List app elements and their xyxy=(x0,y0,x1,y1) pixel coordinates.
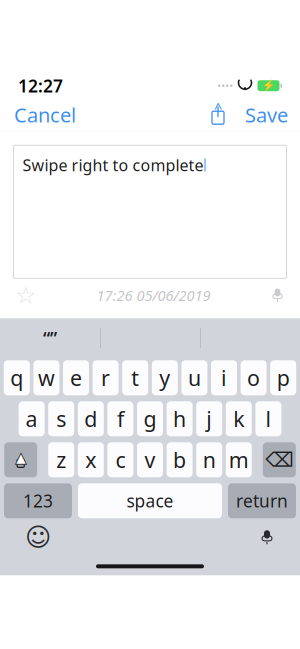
staticText: ☺ xyxy=(25,523,51,552)
staticText: d xyxy=(84,405,97,433)
staticText: ⌫ xyxy=(265,448,293,471)
button[interactable]: Dictate xyxy=(263,283,292,307)
button[interactable]: s xyxy=(48,401,74,436)
staticText: 12:27 xyxy=(18,74,63,97)
button[interactable]: r xyxy=(93,360,119,395)
button[interactable]: Favourite xyxy=(8,277,44,314)
staticText: l xyxy=(265,405,271,433)
staticText: x xyxy=(85,446,96,474)
button[interactable]: Shift xyxy=(4,442,37,477)
staticText: i xyxy=(221,364,227,392)
staticText: Swipe right to complete xyxy=(22,154,203,175)
staticText: f xyxy=(117,405,124,433)
button[interactable]: o xyxy=(241,360,267,395)
button[interactable]: 123 xyxy=(4,483,72,518)
staticText: r xyxy=(101,364,110,392)
button[interactable]: Share xyxy=(203,98,233,132)
staticText: a xyxy=(26,405,38,433)
button[interactable]: e xyxy=(63,360,89,395)
button[interactable]: return xyxy=(228,483,296,518)
button[interactable]: space xyxy=(78,483,222,518)
button[interactable]: v xyxy=(137,442,163,477)
staticText: h xyxy=(173,405,186,433)
staticText: n xyxy=(203,446,216,474)
staticText: k xyxy=(233,405,244,433)
staticText: ▲ xyxy=(15,449,26,466)
button[interactable]: x xyxy=(78,442,104,477)
button[interactable]: l xyxy=(255,401,281,436)
button[interactable]: g xyxy=(137,401,163,436)
button[interactable]: p xyxy=(270,360,296,395)
staticText: t xyxy=(131,364,139,392)
staticText: ☆ xyxy=(15,282,37,309)
staticText: ^ xyxy=(214,98,222,117)
staticText: 123 xyxy=(23,489,53,512)
button[interactable]: n xyxy=(196,442,222,477)
staticText: z xyxy=(56,446,66,474)
staticText: space xyxy=(126,489,173,512)
button[interactable]: q xyxy=(4,360,30,395)
button[interactable]: h xyxy=(167,401,193,436)
staticText: return xyxy=(236,489,288,512)
button[interactable]: i xyxy=(211,360,237,395)
button[interactable]: k xyxy=(226,401,252,436)
staticText: q xyxy=(10,364,23,392)
staticText: u xyxy=(188,364,201,392)
button[interactable]: z xyxy=(48,442,74,477)
staticText: m xyxy=(229,446,249,474)
staticText: e xyxy=(70,364,82,392)
staticText: ⚡ xyxy=(262,80,275,92)
button[interactable]: w xyxy=(33,360,59,395)
staticText: j xyxy=(206,405,212,433)
staticText: y xyxy=(159,364,170,392)
staticText: c xyxy=(115,446,125,474)
button[interactable]: u xyxy=(181,360,207,395)
staticText: v xyxy=(144,446,155,474)
staticText: 17:26 05/06/2019 xyxy=(96,286,210,305)
staticText: b xyxy=(173,446,186,474)
button[interactable]: m xyxy=(226,442,252,477)
button[interactable]: Delete xyxy=(263,442,296,477)
button[interactable]: c xyxy=(107,442,133,477)
staticText: p xyxy=(277,364,290,392)
staticText: “” xyxy=(43,327,57,350)
button[interactable]: Dictation xyxy=(251,525,283,550)
button[interactable]: Emoji xyxy=(17,519,59,556)
button[interactable]: y xyxy=(152,360,178,395)
staticText: △ xyxy=(15,448,27,466)
staticText: s xyxy=(56,405,66,433)
button[interactable]: f xyxy=(107,401,133,436)
button[interactable]: Cancel xyxy=(0,93,90,136)
button[interactable]: j xyxy=(196,401,222,436)
staticText: Cancel xyxy=(14,101,76,128)
staticText: o xyxy=(247,364,260,392)
button[interactable]: t xyxy=(122,360,148,395)
staticText: g xyxy=(143,405,156,433)
button[interactable]: Save xyxy=(233,93,300,136)
button[interactable]: d xyxy=(78,401,104,436)
staticText: w xyxy=(38,364,55,392)
button[interactable]: a xyxy=(19,401,45,436)
button[interactable]: b xyxy=(167,442,193,477)
button[interactable]: “” xyxy=(0,319,100,357)
staticText: Save xyxy=(245,101,288,128)
